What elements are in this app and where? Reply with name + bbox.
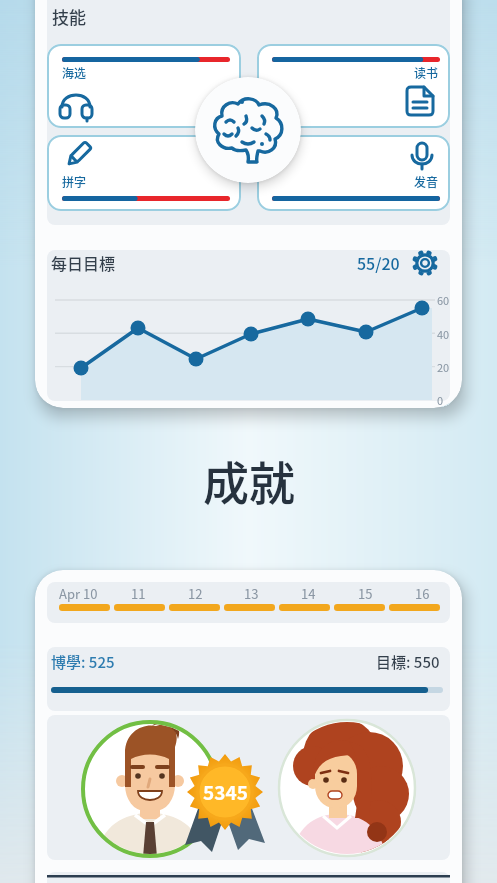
- staticText: Apr 10: [59, 584, 98, 603]
- staticText: 海选: [62, 64, 87, 81]
- staticText: 0: [437, 392, 444, 408]
- button[interactable]: 读书: [257, 44, 450, 128]
- button[interactable]: [279, 720, 415, 856]
- button[interactable]: [83, 722, 217, 856]
- button[interactable]: [195, 77, 301, 183]
- staticText: 拼字: [62, 173, 87, 190]
- button[interactable]: 拼字: [47, 135, 241, 211]
- staticText: 每日目標: [51, 251, 116, 274]
- button[interactable]: 海选: [47, 44, 241, 128]
- staticText: 13: [244, 584, 259, 603]
- staticText: 16: [415, 584, 430, 603]
- staticText: 博學: 525: [51, 651, 115, 673]
- staticText: 40: [437, 326, 450, 342]
- button[interactable]: [410, 248, 440, 278]
- staticText: 5345: [203, 778, 248, 806]
- staticText: 55/20: [357, 251, 400, 274]
- staticText: 技能: [52, 4, 86, 29]
- staticText: 读书: [414, 64, 439, 81]
- staticText: 15: [358, 584, 373, 603]
- staticText: 11: [131, 584, 146, 603]
- staticText: 12: [188, 584, 203, 603]
- staticText: 发音: [414, 173, 439, 190]
- staticText: 14: [301, 584, 316, 603]
- button[interactable]: 发音: [257, 135, 450, 211]
- staticText: 成就: [203, 447, 295, 509]
- staticText: 60: [437, 292, 450, 308]
- staticText: 目標: 550: [376, 651, 440, 673]
- staticText: 20: [437, 359, 450, 375]
